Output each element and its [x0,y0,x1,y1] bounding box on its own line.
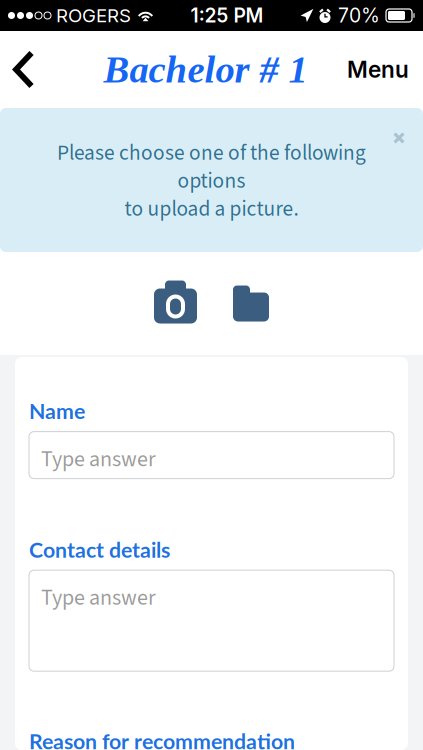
staticText: Reason for recommendation [29,728,295,750]
button[interactable]: Type answer [29,570,394,671]
staticText: Name [29,398,85,424]
staticText: ROGERS [51,4,131,27]
staticText: options [177,166,245,196]
staticText: 1:25 PM [190,4,263,27]
staticText: Please choose one of the following [57,138,366,168]
button[interactable]: Type answer [29,432,394,479]
staticText: Contact details [29,537,170,562]
button[interactable]: Dismiss [379,108,423,158]
staticText: Menu [347,56,409,83]
staticText: Type answer [41,582,156,613]
button[interactable]: Menu [331,31,423,108]
staticText: 70% [338,4,380,27]
button[interactable]: Choose from library [227,281,275,325]
staticText: Type answer [41,444,156,475]
staticText: to upload a picture. [124,194,298,224]
button[interactable]: Take a photo [148,278,203,328]
staticText: Bachelor # 1 [103,48,307,91]
button[interactable]: Back [0,31,46,108]
